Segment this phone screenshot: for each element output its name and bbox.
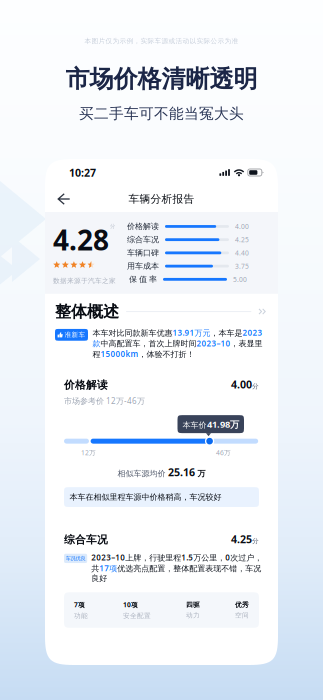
staticText: 分 <box>110 223 115 230</box>
staticText: 用车成本 <box>127 261 159 271</box>
staticText: 本车价 <box>182 420 206 430</box>
staticText: 动力 <box>186 611 200 619</box>
staticText: 车况优良 <box>66 555 86 562</box>
staticText: 价格解读 <box>64 378 108 391</box>
staticText: 12万 <box>81 448 96 457</box>
button[interactable]: 返回 <box>51 187 77 211</box>
staticText: 买二手车可不能当冤大头 <box>79 105 244 123</box>
staticText: 10项 <box>123 600 138 609</box>
staticText: 10:27 <box>69 165 96 180</box>
staticText: 市场价格清晰透明 <box>65 64 257 94</box>
staticText: 综合车况 <box>127 235 159 244</box>
staticText: 本车在相似里程车源中价格稍高，车况较好 <box>69 492 221 502</box>
staticText: 空间 <box>235 611 249 619</box>
staticText: 分 <box>252 382 259 390</box>
staticText: 相似车源均价 <box>117 469 165 478</box>
staticText: 安全配置 <box>123 612 151 620</box>
staticText: 价格解读 <box>127 221 159 231</box>
staticText: 5.00 <box>233 275 247 284</box>
staticText: 车辆分析报告 <box>128 192 194 205</box>
staticText: 2023–10上牌，行驶里程1.5万公里，0次过户，共17项优选亮点配置，整体配… <box>91 552 262 583</box>
staticText: 本图片仅为示例，实际车源或活动以实际公示为准 <box>84 37 238 45</box>
staticText: 4.28 <box>53 221 109 258</box>
staticText: 功能 <box>74 612 88 620</box>
staticText: 4.25 <box>231 532 252 546</box>
staticText: 万 <box>197 469 205 478</box>
staticText: 7项 <box>74 600 85 609</box>
staticText: 4.25 <box>235 235 249 244</box>
staticText: 数据来源于汽车之家 <box>53 277 116 285</box>
staticText: 25.16 <box>168 465 195 479</box>
staticText: 准新车 <box>64 331 85 339</box>
staticText: 41.98万 <box>207 418 239 430</box>
staticText: 优秀 <box>235 601 249 609</box>
staticText: 46万 <box>216 448 231 457</box>
staticText: 四驱 <box>186 601 200 609</box>
staticText: 3.75 <box>235 262 249 271</box>
staticText: 4.40 <box>235 248 249 257</box>
staticText: 4.00 <box>231 377 252 391</box>
staticText: 市场参考价 12万-46万 <box>64 395 145 406</box>
staticText: 分 <box>252 537 259 545</box>
staticText: 本车对比同款新车优惠13.91万元，本车是2023款中高配置车，首次上牌时间20… <box>92 327 262 359</box>
staticText: 车辆口碑 <box>127 248 159 258</box>
staticText: 4.00 <box>235 222 249 231</box>
staticText: 整体概述 <box>55 302 119 321</box>
staticText: 保 值 率 <box>129 274 157 284</box>
staticText: 综合车况 <box>64 533 108 546</box>
